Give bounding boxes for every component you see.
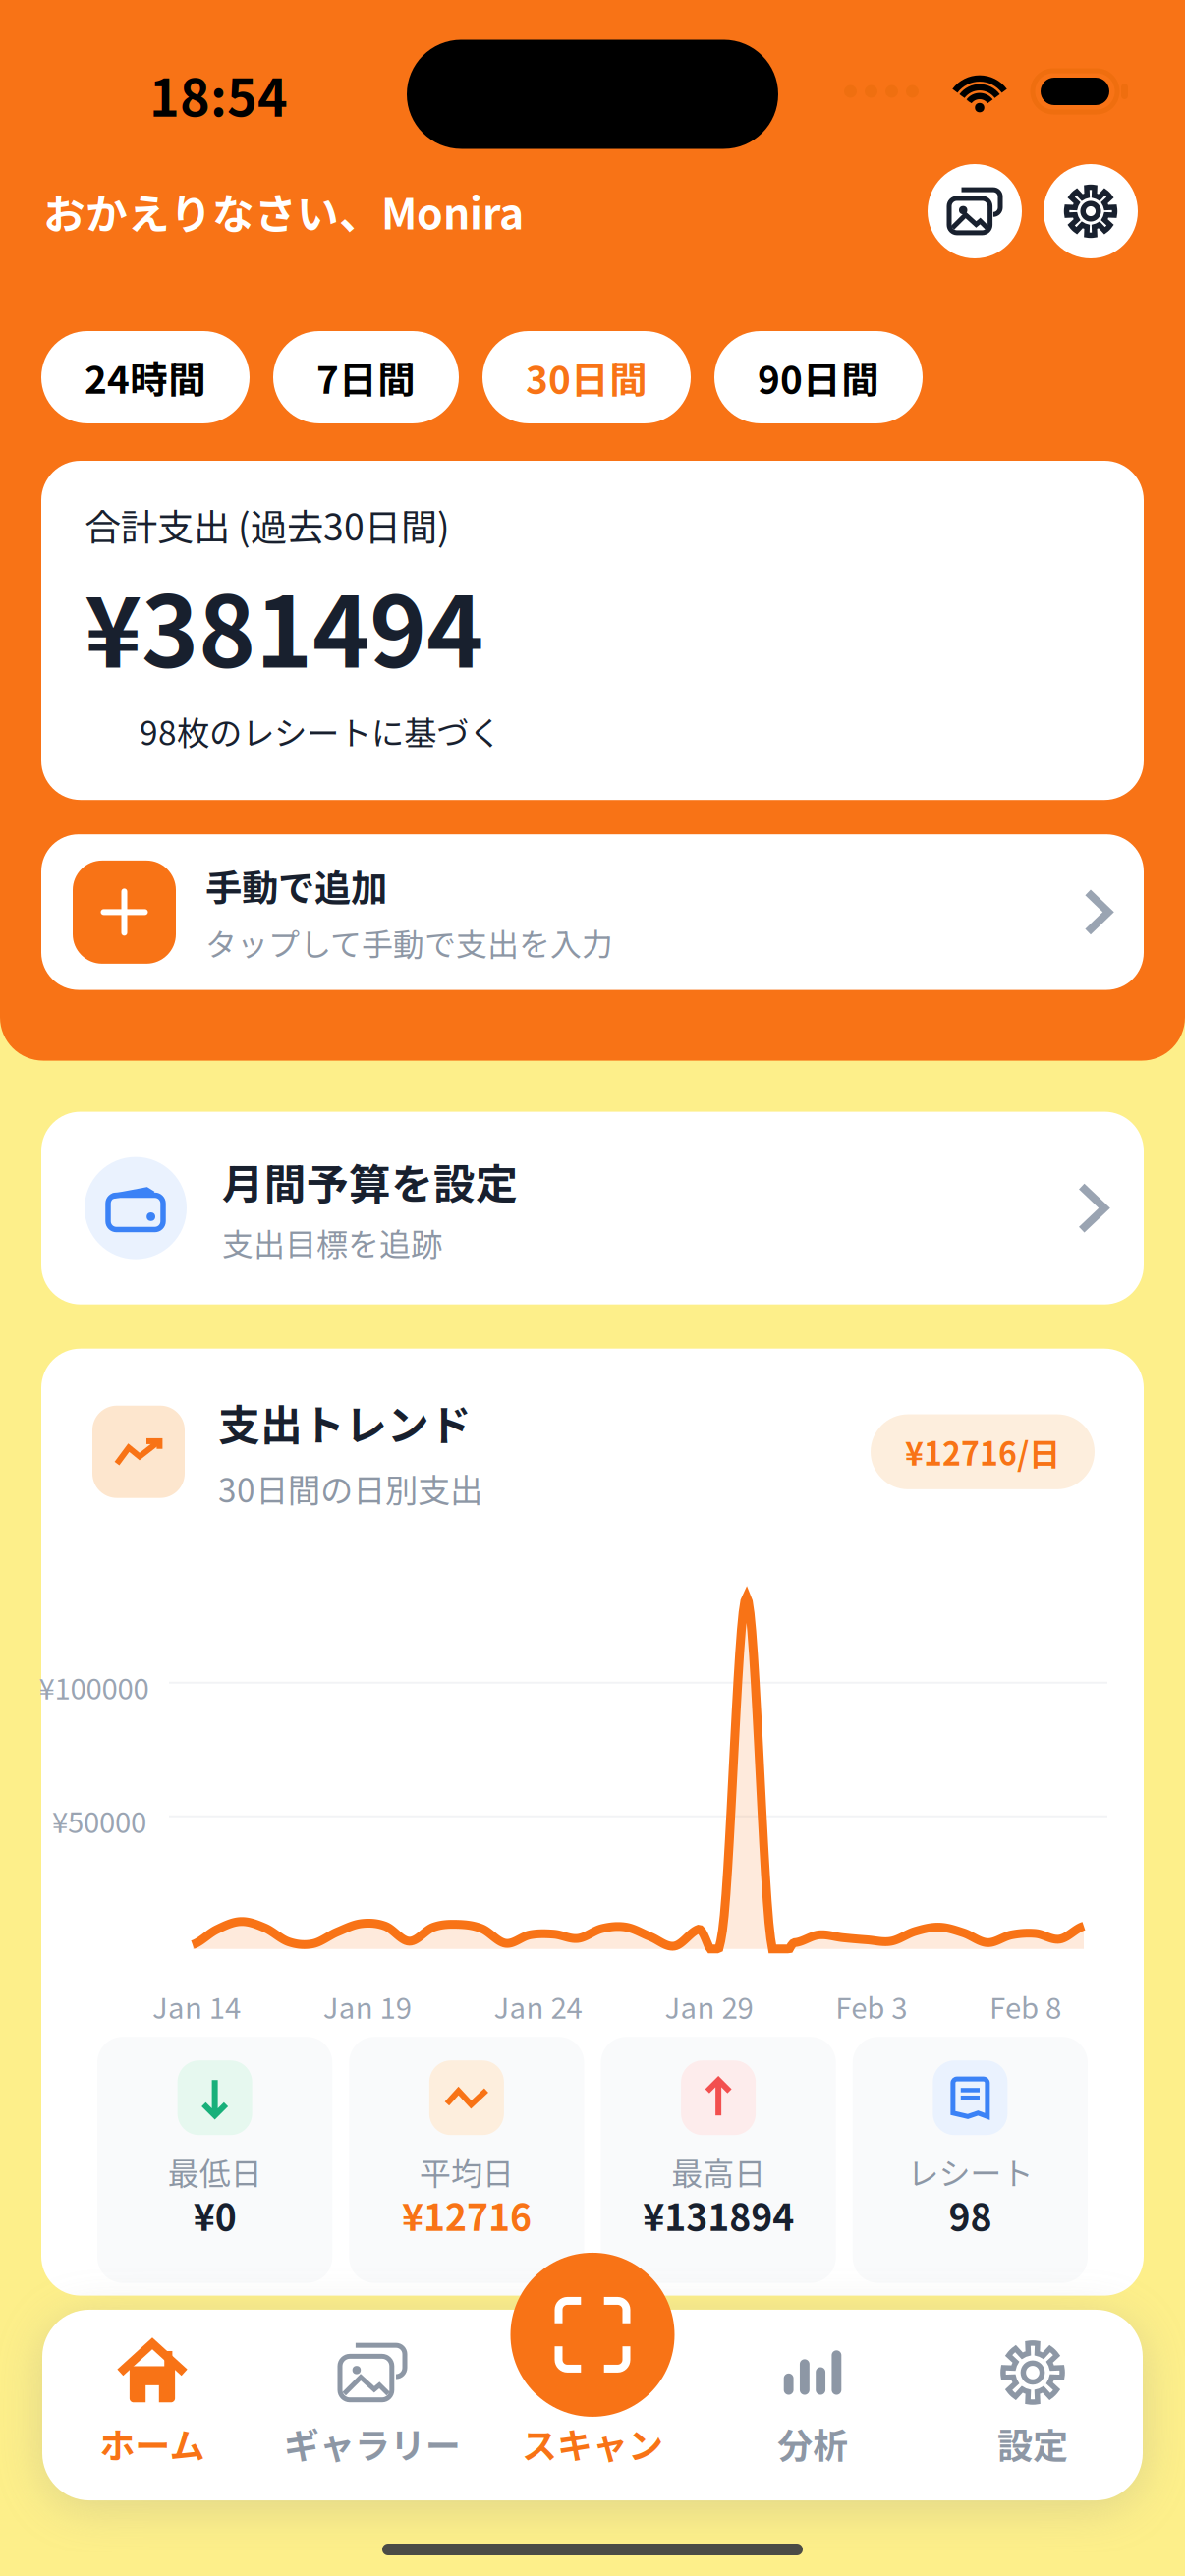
- button[interactable]: 7日間: [273, 331, 459, 423]
- staticText: 7日間: [316, 350, 416, 405]
- staticText: 24時間: [85, 350, 206, 405]
- staticText: ¥131894: [643, 2189, 794, 2242]
- staticText: ¥100000: [39, 1666, 149, 1708]
- staticText: 合計支出 (過去30日間): [85, 498, 450, 551]
- button[interactable]: 30日間: [482, 331, 691, 423]
- button[interactable]: スキャン: [482, 2335, 703, 2475]
- button[interactable]: 24時間: [41, 331, 250, 423]
- staticText: 18:54: [149, 57, 288, 131]
- staticText: ¥12716: [402, 2189, 531, 2242]
- staticText: 30日間: [526, 350, 648, 405]
- button[interactable]: 月間予算を設定: [0, 1061, 1185, 1304]
- staticText: Feb 3: [835, 1985, 907, 2027]
- staticText: 月間予算を設定: [222, 1151, 518, 1212]
- staticText: 設定: [997, 2418, 1068, 2469]
- button[interactable]: Settings: [1044, 164, 1138, 258]
- staticText: ¥381494: [85, 555, 483, 695]
- staticText: ¥50000: [52, 1800, 146, 1841]
- button[interactable]: ホーム: [42, 2335, 262, 2475]
- staticText: 支出トレンド: [218, 1392, 472, 1453]
- staticText: 手動で追加: [205, 859, 387, 912]
- staticText: レシート: [907, 2149, 1033, 2194]
- staticText: 98: [949, 2189, 992, 2242]
- staticText: ギャラリー: [284, 2418, 461, 2469]
- staticText: 最高日: [671, 2149, 766, 2194]
- staticText: 平均日: [419, 2149, 514, 2194]
- button[interactable]: Scan: [510, 2253, 675, 2417]
- staticText: Jan 29: [665, 1985, 753, 2027]
- button[interactable]: 手動で追加: [0, 800, 1185, 990]
- staticText: タップして手動で支出を入力: [205, 920, 613, 965]
- button[interactable]: Gallery: [928, 164, 1022, 258]
- staticText: 分析: [777, 2418, 848, 2469]
- button[interactable]: 90日間: [714, 331, 923, 423]
- staticText: スキャン: [522, 2418, 663, 2469]
- staticText: 30日間の日別支出: [218, 1464, 482, 1512]
- button[interactable]: 設定: [923, 2335, 1143, 2475]
- staticText: おかえりなさい、Monira: [43, 181, 524, 242]
- staticText: 支出目標を追跡: [222, 1220, 442, 1265]
- button[interactable]: 分析: [703, 2335, 923, 2475]
- staticText: Jan 19: [323, 1985, 412, 2027]
- staticText: 90日間: [758, 350, 879, 405]
- staticText: 98枚のレシートに基づく: [140, 707, 501, 755]
- staticText: Jan 14: [152, 1985, 241, 2027]
- staticText: Jan 24: [494, 1985, 582, 2027]
- staticText: ¥0: [193, 2189, 236, 2242]
- staticText: Feb 8: [989, 1985, 1061, 2027]
- staticText: ¥12716/日: [905, 1429, 1060, 1475]
- staticText: ホーム: [100, 2418, 205, 2469]
- staticText: 最低日: [168, 2149, 262, 2194]
- button[interactable]: ギャラリー: [262, 2335, 482, 2475]
